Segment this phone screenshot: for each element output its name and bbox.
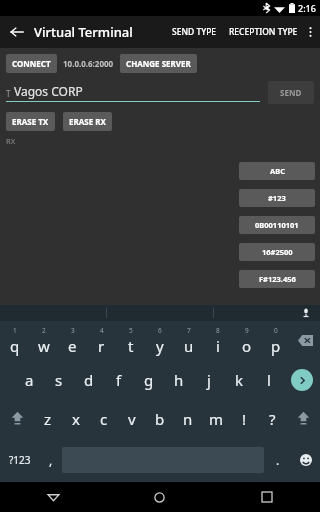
button[interactable]: 0 bbox=[261, 321, 290, 360]
staticText: b bbox=[155, 409, 165, 429]
staticText: CONNECT bbox=[12, 58, 51, 69]
staticText: a bbox=[25, 370, 34, 390]
button[interactable]: 1 bbox=[0, 321, 29, 360]
button[interactable]: F#123.456 bbox=[239, 270, 315, 288]
staticText: s bbox=[55, 370, 63, 390]
staticText: ?123 bbox=[9, 453, 31, 467]
staticText: 2 bbox=[42, 326, 46, 335]
staticText: ABC bbox=[270, 166, 285, 176]
button[interactable]: , bbox=[40, 438, 62, 482]
button[interactable]: c bbox=[90, 399, 118, 438]
button[interactable]: Recents bbox=[213, 482, 320, 512]
button[interactable]: 4 bbox=[87, 321, 116, 360]
button[interactable]: ERASE RX bbox=[63, 112, 112, 131]
staticText: SEND TYPE bbox=[172, 26, 217, 38]
button[interactable]: 16#2500 bbox=[239, 243, 315, 261]
button[interactable]: h bbox=[164, 360, 194, 399]
button[interactable]: Voice input bbox=[300, 307, 312, 319]
button[interactable]: CHANGE SERVER bbox=[120, 54, 197, 73]
staticText: T bbox=[6, 88, 11, 99]
button[interactable]: Shift bbox=[286, 399, 320, 438]
staticText: F#123.456 bbox=[259, 274, 296, 284]
button[interactable]: 0B00110101 bbox=[239, 216, 315, 234]
button[interactable]: ? bbox=[258, 399, 286, 438]
staticText: j bbox=[207, 370, 211, 390]
button[interactable]: . bbox=[264, 438, 292, 482]
staticText: n bbox=[183, 409, 193, 429]
staticText: h bbox=[174, 370, 184, 390]
staticText: ERASE TX bbox=[12, 116, 49, 127]
button[interactable]: Shift bbox=[0, 399, 34, 438]
staticText: 4 bbox=[100, 326, 104, 335]
button[interactable]: RECEPTION TYPE bbox=[227, 26, 300, 38]
staticText: q bbox=[10, 336, 20, 356]
button[interactable]: ERASE TX bbox=[6, 112, 55, 131]
button[interactable]: g bbox=[134, 360, 164, 399]
button[interactable]: 6 bbox=[145, 321, 174, 360]
button[interactable]: CONNECT bbox=[6, 54, 57, 73]
staticText: k bbox=[235, 370, 244, 390]
button[interactable]: z bbox=[34, 399, 62, 438]
button[interactable]: Emoji bbox=[292, 438, 320, 482]
button[interactable]: Enter bbox=[284, 360, 320, 399]
staticText: d bbox=[84, 370, 94, 390]
button[interactable]: Backspace bbox=[290, 321, 320, 360]
button[interactable]: ABC bbox=[239, 162, 315, 180]
button[interactable]: 8 bbox=[203, 321, 232, 360]
button[interactable]: SEND TYPE bbox=[168, 26, 221, 38]
button[interactable]: Back bbox=[0, 16, 34, 48]
staticText: ? bbox=[269, 409, 276, 429]
staticText: Virtual Terminal bbox=[34, 23, 133, 41]
staticText: Vagos CORP bbox=[14, 83, 83, 99]
button[interactable]: Home bbox=[106, 482, 213, 512]
staticText: p bbox=[271, 336, 281, 356]
button[interactable]: 2 bbox=[29, 321, 58, 360]
button[interactable]: 9 bbox=[232, 321, 261, 360]
button[interactable]: SEND bbox=[268, 81, 314, 104]
button[interactable]: k bbox=[224, 360, 254, 399]
button[interactable]: 7 bbox=[174, 321, 203, 360]
staticText: 9 bbox=[245, 326, 249, 335]
staticText: , bbox=[49, 452, 53, 468]
staticText: CHANGE SERVER bbox=[126, 58, 191, 69]
staticText: SEND bbox=[280, 87, 302, 98]
button[interactable]: Back bbox=[0, 482, 106, 512]
button[interactable]: x bbox=[62, 399, 90, 438]
staticText: #123 bbox=[268, 193, 286, 203]
button[interactable]: ! bbox=[230, 399, 258, 438]
staticText: v bbox=[128, 409, 136, 429]
staticText: 3 bbox=[71, 326, 75, 335]
staticText: c bbox=[100, 409, 108, 429]
staticText: r bbox=[98, 336, 105, 356]
staticText: z bbox=[44, 409, 52, 429]
button[interactable]: m bbox=[202, 399, 230, 438]
button[interactable]: More options bbox=[300, 16, 320, 48]
button[interactable]: ?123 bbox=[0, 438, 40, 482]
button[interactable]: s bbox=[44, 360, 74, 399]
button[interactable]: j bbox=[194, 360, 224, 399]
staticText: 0B00110101 bbox=[255, 220, 299, 230]
button[interactable]: d bbox=[74, 360, 104, 399]
staticText: 16#2500 bbox=[262, 247, 293, 257]
staticText: w bbox=[38, 336, 50, 356]
staticText: i bbox=[216, 336, 220, 356]
staticText: 7 bbox=[187, 326, 191, 335]
staticText: l bbox=[267, 370, 271, 390]
button[interactable]: v bbox=[118, 399, 146, 438]
button[interactable]: b bbox=[146, 399, 174, 438]
button[interactable]: f bbox=[104, 360, 134, 399]
staticText: ! bbox=[242, 409, 247, 429]
staticText: ERASE RX bbox=[69, 116, 106, 127]
staticText: . bbox=[276, 452, 280, 468]
staticText: 10.0.0.6:2000 bbox=[63, 58, 114, 69]
staticText: 8 bbox=[216, 326, 220, 335]
button[interactable]: #123 bbox=[239, 189, 315, 207]
button[interactable]: a bbox=[14, 360, 44, 399]
button[interactable]: 3 bbox=[58, 321, 87, 360]
button[interactable]: n bbox=[174, 399, 202, 438]
button[interactable]: l bbox=[254, 360, 284, 399]
button[interactable]: 5 bbox=[116, 321, 145, 360]
